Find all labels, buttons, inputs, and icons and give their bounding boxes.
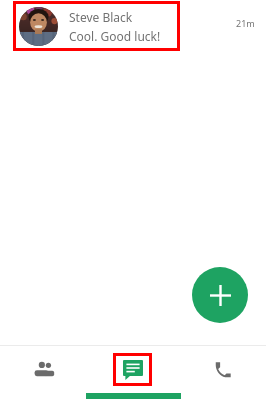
button[interactable]: Steve Black (13, 1, 180, 51)
button[interactable]: New conversation (192, 267, 248, 323)
button[interactable]: Calls (177, 346, 266, 401)
staticText: Steve Black (69, 9, 133, 25)
staticText: Cool. Good luck! (69, 28, 161, 44)
staticText: 21m (236, 17, 255, 29)
button[interactable]: Contacts (0, 346, 88, 401)
button[interactable]: Chats (88, 346, 177, 401)
